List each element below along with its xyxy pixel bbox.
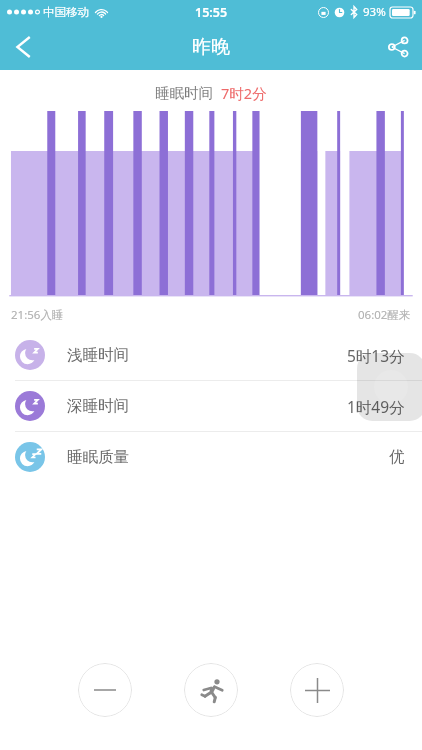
button[interactable]: Increase [290, 663, 344, 717]
staticText: 5时13分 [347, 345, 405, 366]
staticText: 7时2分 [221, 83, 267, 103]
staticText: 睡眠质量 [67, 447, 129, 467]
staticText: 93% [363, 4, 386, 20]
button[interactable]: Decrease [78, 663, 132, 717]
staticText: 06:02醒来 [358, 307, 411, 323]
staticText: 15:55 [195, 4, 228, 21]
staticText: 睡眠时间 [155, 84, 213, 102]
button[interactable]: 浅睡时间 [0, 330, 422, 380]
staticText: 1时49分 [347, 396, 405, 417]
staticText: 优 [389, 447, 405, 467]
button[interactable]: Activity [184, 663, 238, 717]
button[interactable]: Assistive touch [357, 353, 422, 421]
staticText: 昨晚 [192, 35, 230, 59]
staticText: 浅睡时间 [67, 345, 129, 365]
staticText: 中国移动 [43, 5, 89, 19]
button[interactable]: 睡眠质量 [0, 432, 422, 482]
staticText: 深睡时间 [67, 396, 129, 416]
button[interactable]: Share [374, 24, 422, 70]
staticText: 21:56入睡 [11, 307, 64, 323]
button[interactable]: Back [0, 24, 48, 70]
button[interactable]: 深睡时间 [0, 381, 422, 431]
